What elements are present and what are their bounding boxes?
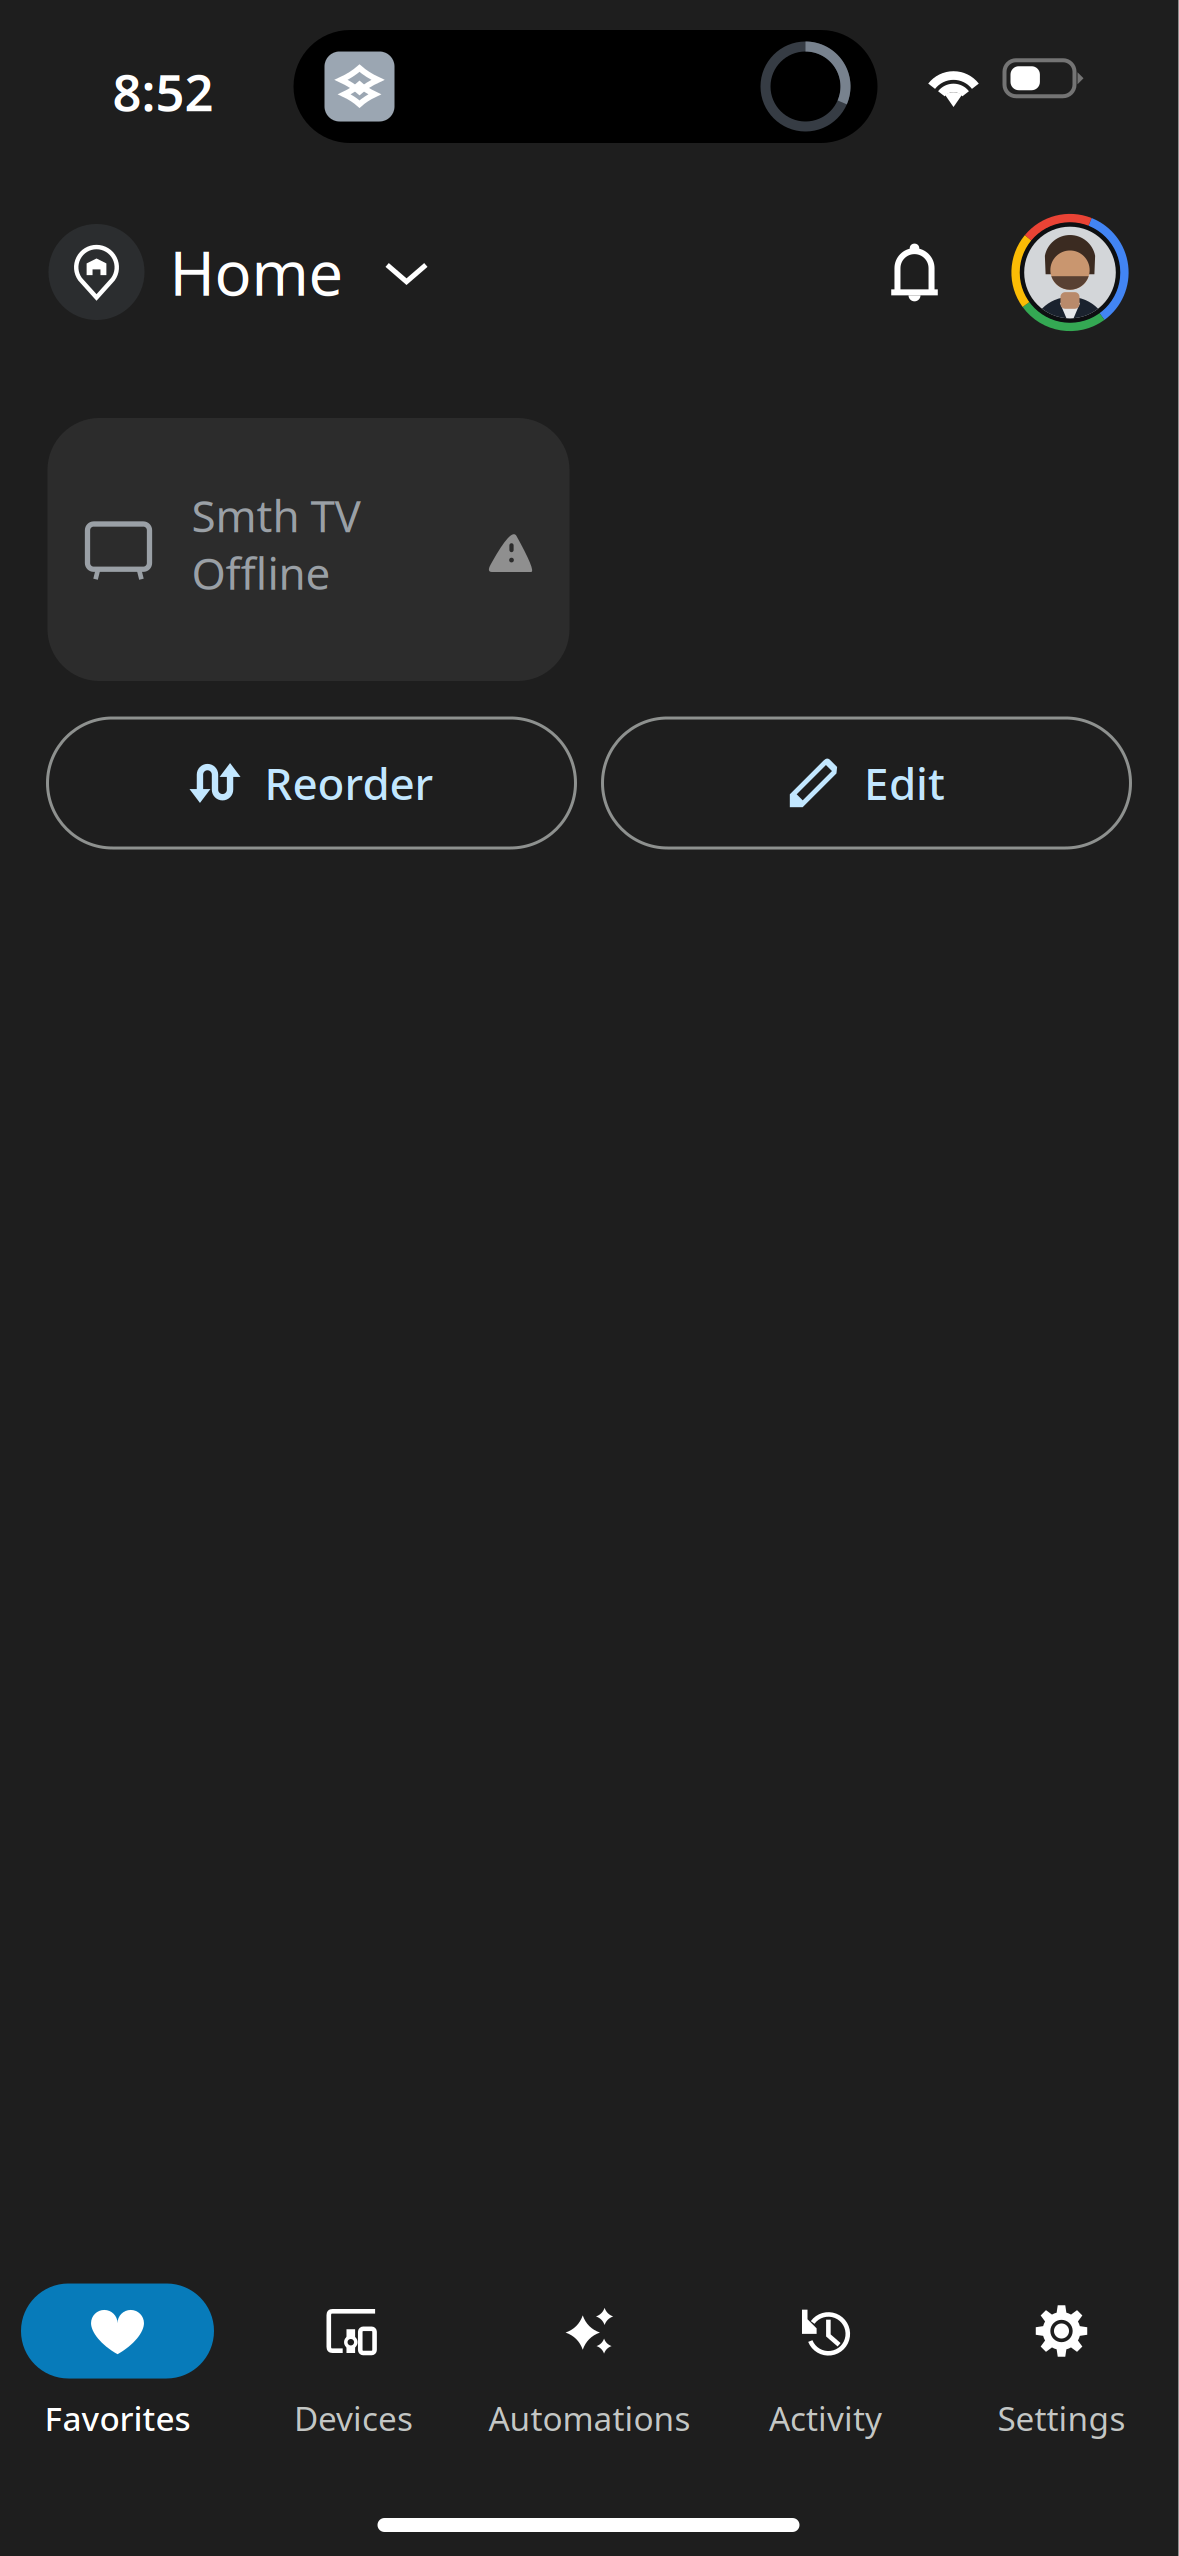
staticText: Favorites <box>44 2396 190 2440</box>
button[interactable]: Settings <box>943 2283 1179 2475</box>
staticText: Settings <box>997 2396 1125 2440</box>
staticText: Activity <box>769 2396 882 2440</box>
button[interactable]: Activity <box>707 2283 943 2475</box>
button[interactable]: Reorder <box>47 718 575 848</box>
staticText: Edit <box>864 754 945 812</box>
button[interactable]: Notifications <box>866 224 962 320</box>
staticText: Reorder <box>264 754 433 812</box>
button[interactable]: Devices <box>235 2283 471 2475</box>
button[interactable]: Smth TV <box>47 418 569 681</box>
staticText: Automations <box>488 2396 690 2440</box>
button[interactable]: Favorites <box>0 2283 235 2475</box>
staticText: 8:52 <box>112 58 213 125</box>
staticText: Devices <box>294 2396 413 2440</box>
staticText: Offline <box>191 543 330 602</box>
button[interactable]: Automations <box>471 2283 707 2475</box>
button[interactable]: Home <box>48 224 428 320</box>
staticText: Home <box>169 231 343 313</box>
button[interactable]: Account <box>1010 213 1129 332</box>
staticText: Smth TV <box>191 486 360 544</box>
button[interactable]: Edit <box>602 718 1130 848</box>
